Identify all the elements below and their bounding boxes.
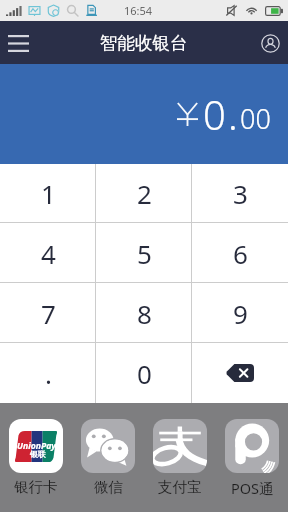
button[interactable]: . xyxy=(0,343,96,403)
button[interactable]: Account xyxy=(254,27,286,59)
staticText: 智能收银台 xyxy=(100,32,188,54)
staticText: 微信 xyxy=(94,478,123,496)
button[interactable]: 3 xyxy=(192,164,288,223)
staticText: 1 xyxy=(41,176,56,211)
button[interactable] xyxy=(192,343,288,403)
button[interactable]: 5 xyxy=(96,223,192,283)
button[interactable]: 支付宝 xyxy=(144,403,216,496)
button[interactable]: 微信 xyxy=(72,403,144,496)
staticText: 6 xyxy=(233,236,248,271)
staticText: 16:54 xyxy=(124,3,153,18)
button[interactable]: 2 xyxy=(96,164,192,223)
button[interactable]: 9 xyxy=(192,283,288,343)
button[interactable]: 8 xyxy=(96,283,192,343)
staticText: 0 xyxy=(137,356,152,391)
button[interactable]: 4 xyxy=(0,223,96,283)
staticText: 2 xyxy=(137,176,152,211)
button[interactable]: UnionPay xyxy=(0,403,72,496)
staticText: 银联 xyxy=(30,449,46,459)
staticText: 3 xyxy=(233,176,248,211)
staticText: UnionPay xyxy=(17,440,56,452)
button[interactable]: 7 xyxy=(0,283,96,343)
staticText: 00 xyxy=(240,100,271,137)
staticText: 5 xyxy=(137,236,152,271)
button[interactable]: Menu xyxy=(2,27,34,59)
button[interactable]: POS通 xyxy=(216,403,288,498)
staticText: 银行卡 xyxy=(14,478,58,496)
button[interactable]: 1 xyxy=(0,164,96,223)
button[interactable]: 6 xyxy=(192,223,288,283)
staticText: 支付宝 xyxy=(158,478,202,496)
staticText: 7 xyxy=(41,296,56,331)
staticText: 4 xyxy=(41,236,56,271)
button[interactable]: 0 xyxy=(96,343,192,403)
staticText: 8 xyxy=(137,296,152,331)
staticText: 9 xyxy=(233,296,248,331)
staticText: POS通 xyxy=(231,478,274,498)
staticText: . xyxy=(228,87,238,141)
staticText: 0 xyxy=(203,87,226,141)
staticText: . xyxy=(45,356,52,391)
